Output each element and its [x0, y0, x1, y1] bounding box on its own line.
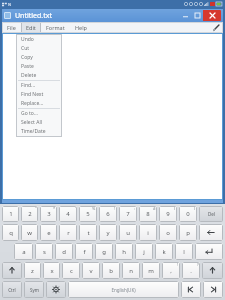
button[interactable]: b: [102, 262, 120, 279]
button[interactable]: Close: [203, 10, 221, 21]
button[interactable]: Sym: [24, 281, 44, 298]
button[interactable]: l: [175, 243, 193, 260]
button[interactable]: r: [59, 224, 77, 241]
button[interactable]: Edit mode: [209, 22, 223, 33]
button[interactable]: 3: [40, 206, 57, 222]
button[interactable]: Find Next: [16, 90, 62, 99]
button[interactable]: Find...: [16, 81, 62, 90]
button[interactable]: n: [122, 262, 140, 279]
staticText: #: [153, 206, 156, 211]
button[interactable]: Format: [41, 22, 70, 33]
button[interactable]: x: [43, 262, 60, 279]
staticText: x: [50, 267, 54, 275]
button[interactable]: w: [21, 224, 38, 241]
staticText: ): [194, 206, 196, 211]
button[interactable]: 5: [79, 206, 97, 222]
staticText: 6: [106, 210, 110, 218]
button[interactable]: ,: [162, 262, 180, 279]
button[interactable]: i: [139, 224, 157, 241]
button[interactable]: 6: [99, 206, 117, 222]
staticText: :: [134, 206, 136, 211]
button[interactable]: 2: [21, 206, 38, 222]
button[interactable]: Enter: [195, 243, 223, 260]
staticText: !: [177, 262, 179, 267]
button[interactable]: t: [79, 224, 97, 241]
button[interactable]: Shift: [2, 262, 22, 279]
button[interactable]: g: [95, 243, 113, 260]
staticText: 0: [186, 210, 190, 218]
button[interactable]: h: [115, 243, 133, 260]
staticText: k: [162, 248, 166, 256]
button[interactable]: q: [2, 224, 19, 241]
button[interactable]: v: [82, 262, 100, 279]
button[interactable]: e: [40, 224, 57, 241]
button[interactable]: Backspace: [199, 224, 223, 241]
button[interactable]: p: [179, 224, 197, 241]
button[interactable]: Minimize: [179, 11, 191, 20]
button[interactable]: Paste: [16, 62, 62, 71]
staticText: h: [122, 248, 126, 256]
button[interactable]: a: [14, 243, 33, 260]
staticText: Edit: [26, 24, 36, 31]
button[interactable]: Keyboard settings: [46, 281, 66, 298]
button[interactable]: 9: [159, 206, 177, 222]
staticText: Undo: [21, 36, 34, 43]
button[interactable]: Help: [70, 22, 92, 33]
button[interactable]: s: [35, 243, 53, 260]
staticText: (: [174, 206, 176, 211]
staticText: *: [53, 206, 56, 211]
staticText: Untitled.txt: [15, 11, 52, 21]
staticText: f: [83, 248, 86, 256]
staticText: z: [31, 267, 34, 275]
staticText: u: [126, 229, 130, 237]
button[interactable]: m: [142, 262, 160, 279]
staticText: o: [166, 229, 170, 237]
staticText: b: [109, 267, 113, 275]
staticText: Find Next: [21, 91, 44, 98]
button[interactable]: .: [182, 262, 200, 279]
staticText: e: [47, 229, 51, 237]
button[interactable]: z: [24, 262, 41, 279]
button[interactable]: Go to...: [16, 109, 62, 118]
button[interactable]: Maximize: [191, 11, 203, 20]
button[interactable]: Time/Date: [16, 127, 62, 136]
button[interactable]: Ctrl: [2, 281, 22, 298]
staticText: v: [89, 267, 93, 275]
button[interactable]: Delete: [16, 71, 62, 80]
staticText: Time/Date: [21, 128, 46, 135]
button[interactable]: Edit: [21, 22, 41, 33]
button[interactable]: Undo: [16, 35, 62, 44]
button[interactable]: English(UK): [68, 281, 179, 298]
staticText: File: [7, 24, 16, 31]
staticText: q: [9, 229, 13, 237]
button[interactable]: Copy: [16, 53, 62, 62]
button[interactable]: 8: [139, 206, 157, 222]
button[interactable]: Select All: [16, 118, 62, 127]
staticText: N: [8, 2, 12, 7]
button[interactable]: u: [119, 224, 137, 241]
button[interactable]: Cut: [16, 44, 62, 53]
staticText: ?: [197, 262, 199, 267]
button[interactable]: Shift: [202, 262, 223, 279]
button[interactable]: Replace...: [16, 99, 62, 108]
button[interactable]: 4: [59, 206, 77, 222]
button[interactable]: k: [155, 243, 173, 260]
button[interactable]: y: [99, 224, 117, 241]
button[interactable]: Previous: [181, 281, 201, 298]
button[interactable]: f: [75, 243, 93, 260]
staticText: Replace...: [21, 100, 44, 107]
button[interactable]: 7: [119, 206, 137, 222]
button[interactable]: o: [159, 224, 177, 241]
button[interactable]: Next: [203, 281, 223, 298]
button[interactable]: Del: [199, 206, 223, 222]
staticText: w: [27, 229, 32, 237]
button[interactable]: File: [2, 22, 21, 33]
staticText: m: [148, 267, 154, 275]
staticText: ': [75, 206, 76, 211]
staticText: y: [106, 229, 110, 237]
button[interactable]: d: [55, 243, 73, 260]
button[interactable]: 0: [179, 206, 197, 222]
button[interactable]: 1: [2, 206, 19, 222]
button[interactable]: c: [62, 262, 80, 279]
button[interactable]: j: [135, 243, 153, 260]
